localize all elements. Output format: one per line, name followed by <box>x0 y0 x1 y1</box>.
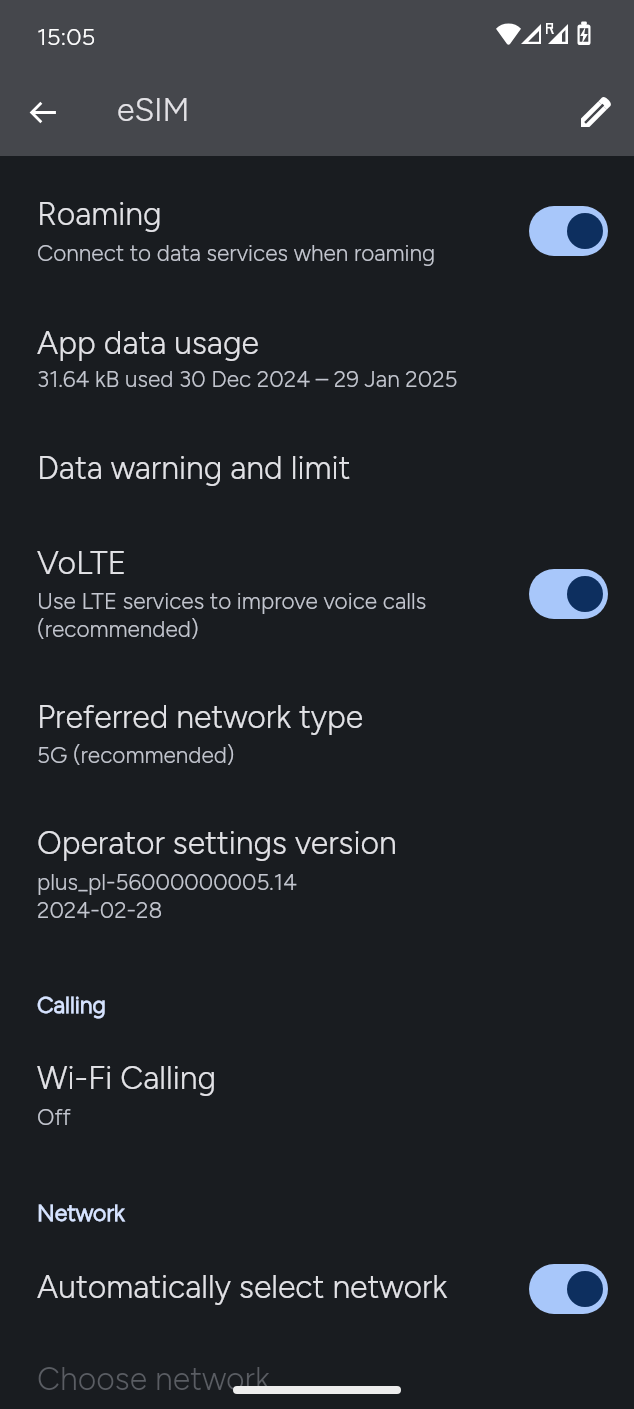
staticText: 31.64 kB used 30 Dec 2024 – 29 Jan 2025 <box>37 366 458 393</box>
button[interactable]: Back <box>13 82 73 142</box>
staticText: eSIM <box>117 91 190 129</box>
staticText: 5G (recommended) <box>37 742 235 769</box>
staticText: Choose network <box>37 1360 270 1398</box>
button[interactable]: Choose network <box>0 1338 634 1409</box>
button[interactable]: Wi-Fi Calling <box>0 1038 634 1165</box>
staticText: Operator settings version <box>37 824 397 862</box>
button[interactable]: Network <box>0 1174 634 1238</box>
staticText: Roaming <box>37 195 162 233</box>
button[interactable]: Roaming <box>0 172 634 290</box>
button[interactable]: Toggle Roaming <box>529 206 608 256</box>
staticText: plus_pl-56000000005.14 <box>37 869 297 896</box>
staticText: Calling <box>37 991 106 1019</box>
button[interactable]: Toggle Automatically select network <box>529 1264 608 1314</box>
staticText: Data warning and limit <box>37 449 351 487</box>
staticText: Network <box>37 1199 125 1227</box>
button[interactable]: VoLTE <box>0 522 634 666</box>
staticText: Preferred network type <box>37 698 364 736</box>
button[interactable]: App data usage <box>0 300 634 416</box>
staticText: Connect to data services when roaming <box>37 240 436 267</box>
staticText: Wi-Fi Calling <box>37 1059 217 1097</box>
staticText: App data usage <box>37 324 259 362</box>
staticText: Use LTE services to improve voice calls <box>37 588 427 615</box>
button[interactable]: Toggle VoLTE <box>529 569 608 619</box>
staticText: Off <box>37 1104 71 1131</box>
staticText: 2024-02-28 <box>37 897 163 924</box>
staticText: Automatically select network <box>37 1268 448 1306</box>
button[interactable]: Data warning and limit <box>0 426 634 512</box>
staticText: 15:05 <box>37 22 96 51</box>
button[interactable]: Automatically select network <box>0 1246 634 1332</box>
button[interactable]: Operator settings version <box>0 802 634 946</box>
button[interactable]: Edit <box>566 82 626 142</box>
staticText: VoLTE <box>37 544 127 582</box>
button[interactable]: Calling <box>0 966 634 1030</box>
button[interactable]: Preferred network type <box>0 676 634 792</box>
staticText: (recommended) <box>37 616 199 643</box>
